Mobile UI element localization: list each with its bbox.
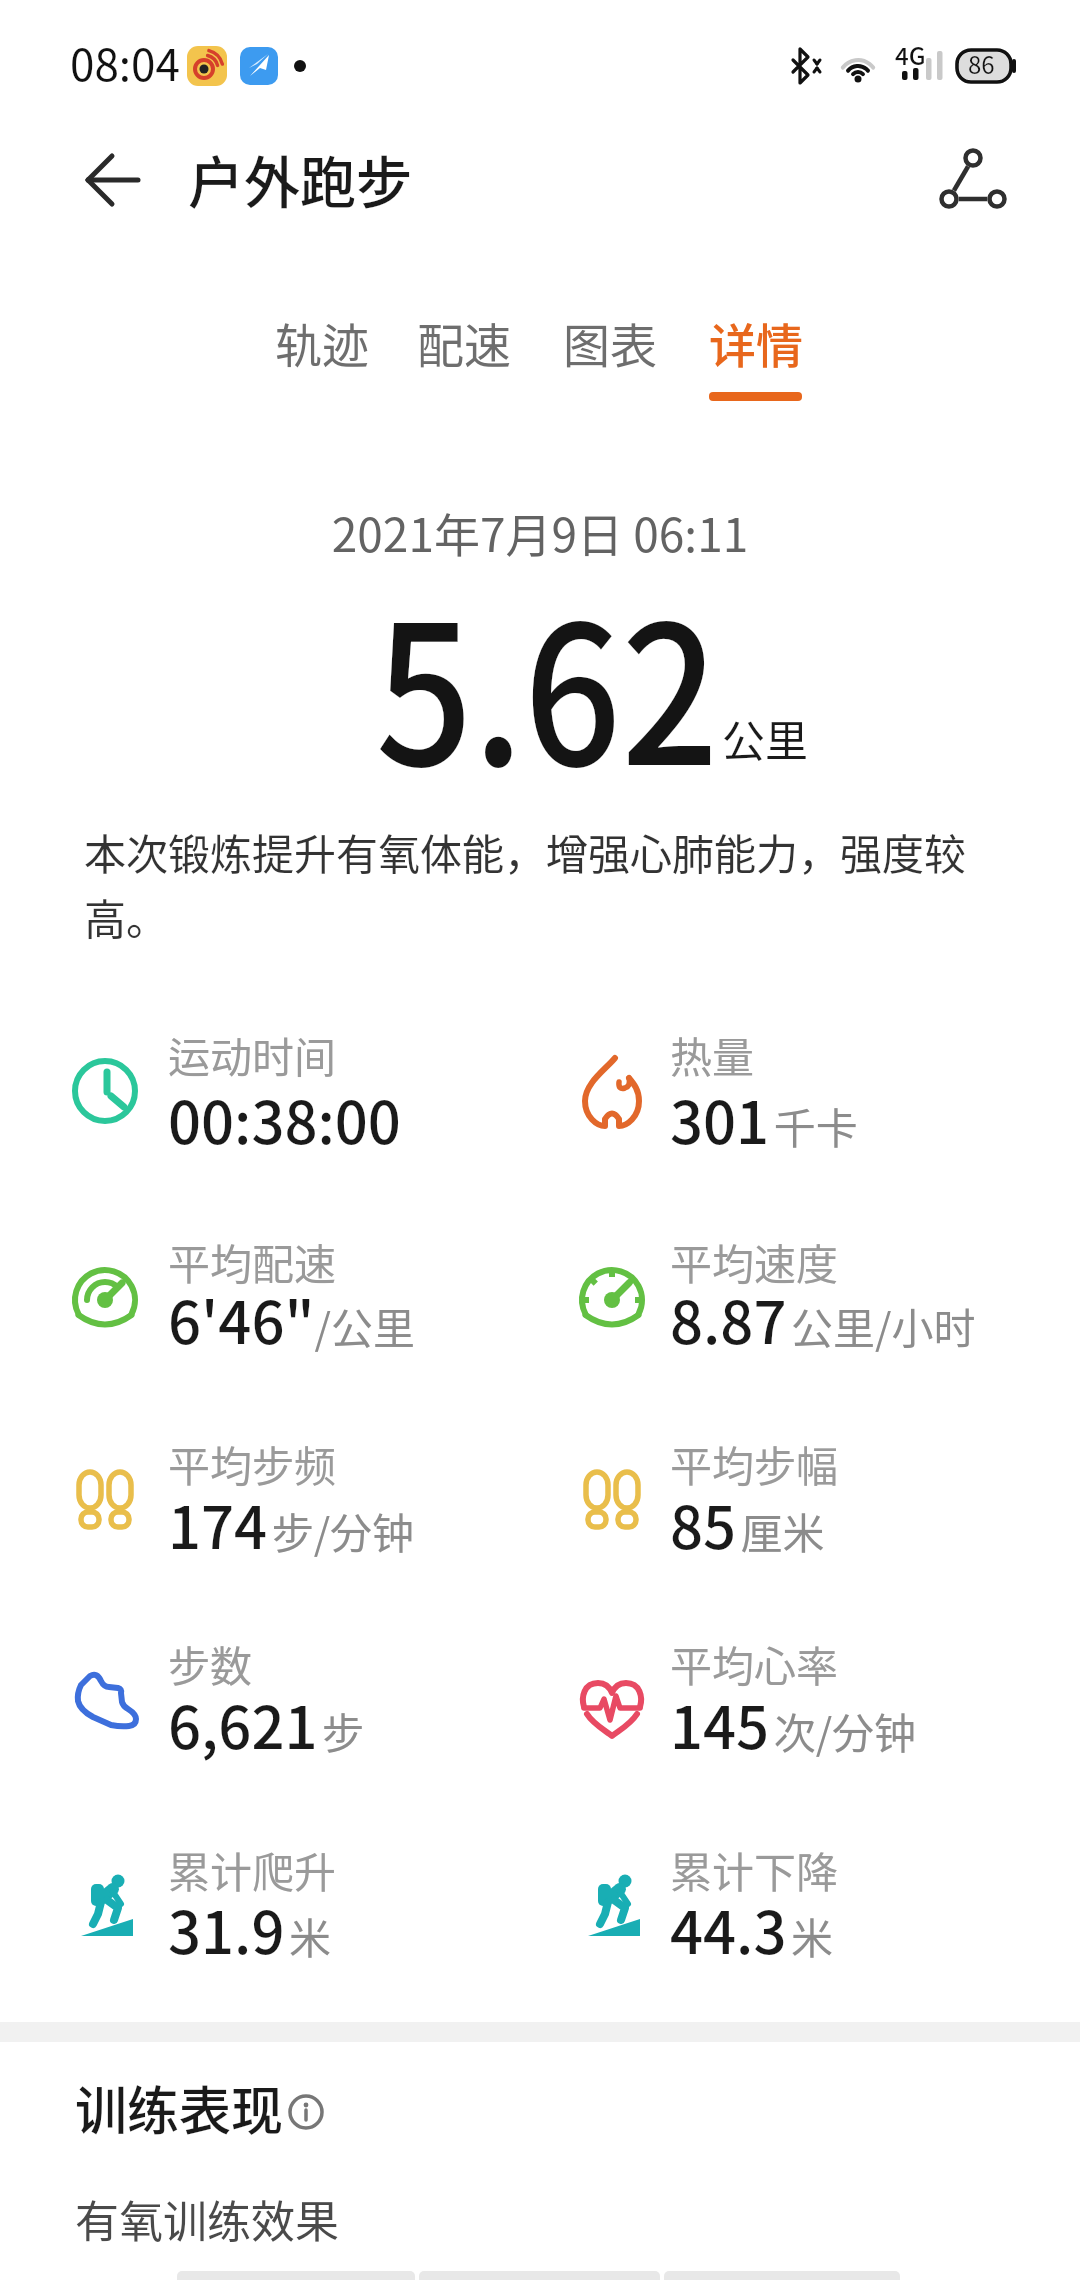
staticText: 44.3 米 xyxy=(670,1887,833,1971)
staticText: 图表 xyxy=(563,308,657,376)
button[interactable]: 图表 xyxy=(543,305,677,407)
staticText: 301 千卡 xyxy=(670,1077,858,1161)
staticText: 户外跑步 xyxy=(188,138,412,219)
staticText: 6'46"/公里 xyxy=(168,1277,415,1361)
staticText: 5.62 xyxy=(66,542,1028,820)
button[interactable] xyxy=(70,146,150,216)
staticText: 31.9 米 xyxy=(168,1887,331,1971)
staticText: 平均步幅 xyxy=(670,1433,839,1494)
staticText: 有氧训练效果 xyxy=(75,2187,339,2251)
staticText: 累计下降 xyxy=(670,1839,839,1900)
button[interactable] xyxy=(286,2092,326,2132)
staticText: 86 xyxy=(968,46,995,81)
staticText: 公里 xyxy=(722,707,808,769)
staticText: 平均速度 xyxy=(670,1231,839,1292)
staticText: 174 步/分钟 xyxy=(168,1482,415,1566)
staticText: 145 次/分钟 xyxy=(670,1682,917,1766)
staticText: 运动时间 xyxy=(168,1024,337,1085)
staticText: 85 厘米 xyxy=(670,1482,825,1566)
button[interactable]: 配速 xyxy=(397,305,531,407)
staticText: 2021年7月9日 06:11 xyxy=(0,499,1080,566)
staticText: 00:38:00 xyxy=(168,1077,401,1161)
staticText: 平均配速 xyxy=(168,1231,337,1292)
staticText: 平均步频 xyxy=(168,1433,337,1494)
staticText: 08:04 xyxy=(70,30,180,94)
staticText: 轨迹 xyxy=(275,308,369,376)
staticText: 8.87 公里/小时 xyxy=(670,1277,976,1361)
staticText: 4G xyxy=(895,37,926,72)
button[interactable]: 轨迹 xyxy=(255,305,389,407)
staticText: 本次锻炼提升有氧体能，增强心肺能力，强度较高。 xyxy=(84,821,984,991)
staticText: 配速 xyxy=(417,308,511,376)
staticText: 热量 xyxy=(670,1024,755,1085)
button[interactable]: 详情 xyxy=(689,305,823,407)
staticText: 累计爬升 xyxy=(168,1839,337,1900)
staticText: 6,621 步 xyxy=(168,1682,365,1766)
staticText: 详情 xyxy=(709,308,803,376)
staticText: 步数 xyxy=(168,1633,253,1694)
staticText: 平均心率 xyxy=(670,1633,839,1694)
button[interactable] xyxy=(925,135,1015,225)
staticText: 训练表现 xyxy=(75,2070,284,2145)
